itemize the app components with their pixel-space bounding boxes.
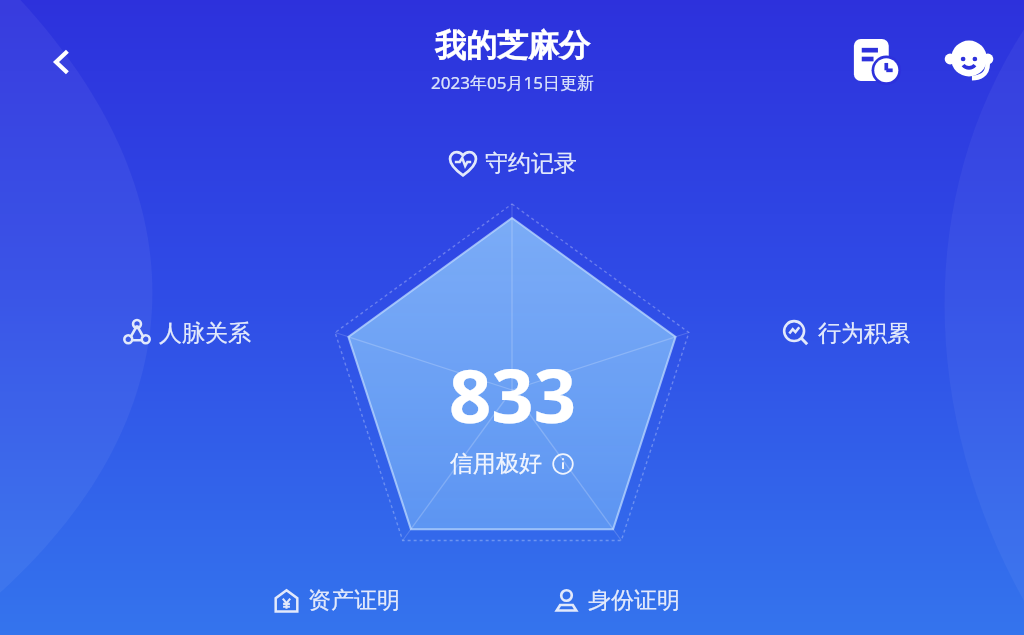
- button[interactable]: 资产证明: [272, 586, 400, 615]
- button[interactable]: 信用极好: [450, 449, 575, 478]
- button[interactable]: 守约记录: [448, 148, 577, 178]
- staticText: 行为积累: [818, 319, 910, 348]
- staticText: 守约记录: [485, 149, 577, 178]
- staticText: 我的芝麻分: [435, 26, 590, 65]
- staticText: 2023年05月15日更新: [431, 71, 594, 94]
- button[interactable]: Customer service: [942, 33, 996, 87]
- staticText: 身份证明: [588, 586, 680, 615]
- button[interactable]: 人脉关系: [122, 318, 251, 348]
- button[interactable]: 行为积累: [781, 318, 910, 348]
- staticText: 资产证明: [308, 586, 400, 615]
- staticText: 833: [449, 344, 576, 445]
- staticText: 信用极好: [450, 449, 542, 478]
- staticText: 人脉关系: [159, 319, 251, 348]
- button[interactable]: 身份证明: [552, 586, 680, 615]
- button[interactable]: Back: [36, 36, 88, 88]
- button[interactable]: Score history: [848, 33, 902, 87]
